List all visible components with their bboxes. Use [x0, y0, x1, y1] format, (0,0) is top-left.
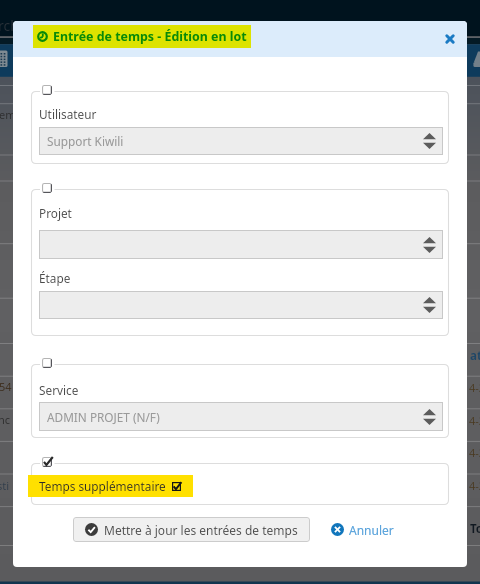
staticText: rch: [0, 16, 19, 35]
staticText: 54: [0, 379, 12, 394]
button[interactable]: Sélectionner ce champ: [42, 85, 52, 95]
staticText: Étape: [39, 270, 71, 286]
staticText: Temps supplémentaire: [39, 478, 166, 494]
staticText: em: [0, 107, 16, 122]
staticText: Support Kiwili: [47, 133, 124, 149]
staticText: at: [470, 348, 480, 364]
button[interactable]: Fermer: [438, 27, 462, 51]
staticText: ADMIN PROJET (N/F): [47, 409, 160, 425]
staticText: 4-2: [469, 445, 480, 460]
staticText: To: [470, 521, 480, 537]
staticText: Utilisateur: [39, 106, 97, 122]
staticText: 4-2: [469, 478, 480, 493]
button[interactable]: Support Kiwili: [39, 127, 443, 155]
button[interactable]: [39, 291, 443, 319]
staticText: Service: [39, 382, 79, 398]
staticText: 4-2: [469, 413, 480, 428]
staticText: Entrée de temps - Édition en lot: [53, 28, 247, 45]
button[interactable]: [39, 230, 443, 259]
staticText: Mettre à jour les entrées de temps: [104, 522, 298, 538]
staticText: Annuler: [349, 522, 394, 538]
staticText: Projet: [39, 205, 72, 221]
button[interactable]: ADMIN PROJET (N/F): [39, 402, 443, 431]
staticText: sti: [0, 478, 10, 493]
button[interactable]: Sélectionner ce champ: [42, 457, 52, 467]
button[interactable]: Mettre à jour les entrées de temps: [73, 517, 310, 542]
button[interactable]: Sélectionner ce champ: [42, 358, 52, 368]
staticText: nc: [0, 412, 11, 427]
staticText: 4-2: [469, 380, 480, 395]
button[interactable]: Sélectionner ce champ: [42, 183, 52, 193]
button[interactable]: Annuler: [331, 517, 394, 542]
